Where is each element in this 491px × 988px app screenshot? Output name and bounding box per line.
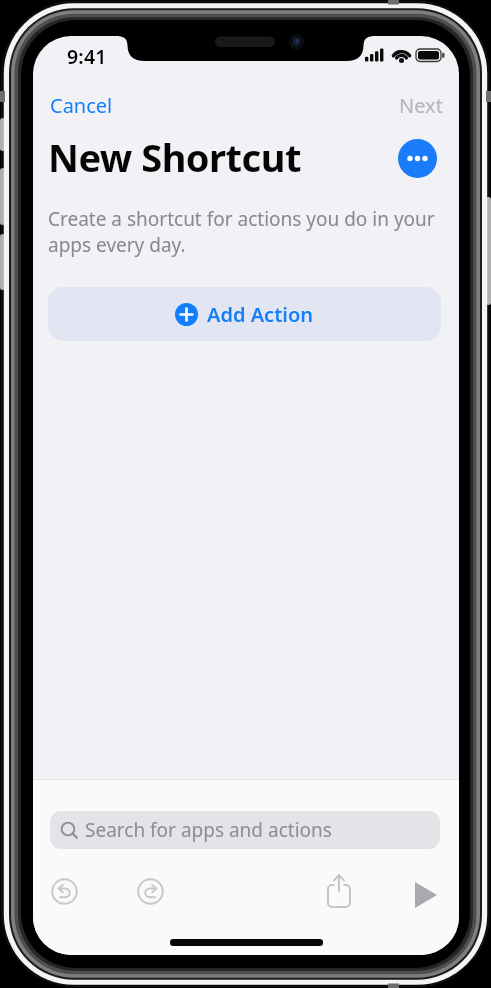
button[interactable]: Next [392,85,450,126]
staticText: Create a shortcut for actions you do in … [48,206,435,257]
staticText: Add Action [207,301,314,328]
staticText: Cancel [50,92,113,119]
button[interactable]: Cancel [43,85,120,126]
button[interactable] [51,878,78,905]
staticText: Search for apps and actions [85,817,332,843]
button[interactable] [137,878,164,905]
button[interactable] [413,882,439,910]
staticText: 9:41 [67,43,107,70]
staticText: New Shortcut [48,131,301,183]
button[interactable] [398,139,437,178]
button[interactable]: Search for apps and actions [50,811,440,849]
button[interactable] [327,874,351,908]
button[interactable]: Add Action [48,287,441,341]
staticText: Next [399,92,443,119]
